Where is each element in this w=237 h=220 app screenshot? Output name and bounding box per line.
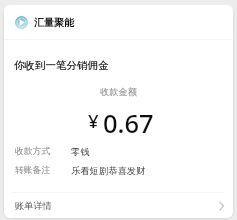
staticText: 零钱 bbox=[71, 146, 90, 158]
staticText: 你收到一笔分销佣金 bbox=[14, 59, 109, 72]
staticText: 账单详情 bbox=[15, 200, 52, 212]
button[interactable]: 账单详情 bbox=[4, 193, 233, 218]
staticText: ¥ bbox=[88, 108, 99, 133]
staticText: 你收到一笔分销佣金 bbox=[14, 59, 109, 72]
other: 账单详情 bbox=[217, 200, 226, 212]
staticText: 收款方式 bbox=[15, 146, 51, 157]
staticText: 汇量聚能 bbox=[34, 16, 74, 29]
staticText: 转账备注 bbox=[15, 165, 51, 176]
button[interactable]: 汇量聚能 bbox=[4, 14, 233, 30]
staticText: 0.67 bbox=[103, 106, 154, 141]
staticText: 乐看短剧恭喜发财 bbox=[71, 165, 146, 177]
staticText: 收款金额 bbox=[4, 86, 233, 98]
